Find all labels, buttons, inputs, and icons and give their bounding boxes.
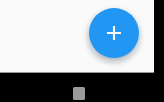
button[interactable]: Add bbox=[89, 8, 139, 58]
button[interactable]: Recents bbox=[73, 87, 85, 100]
